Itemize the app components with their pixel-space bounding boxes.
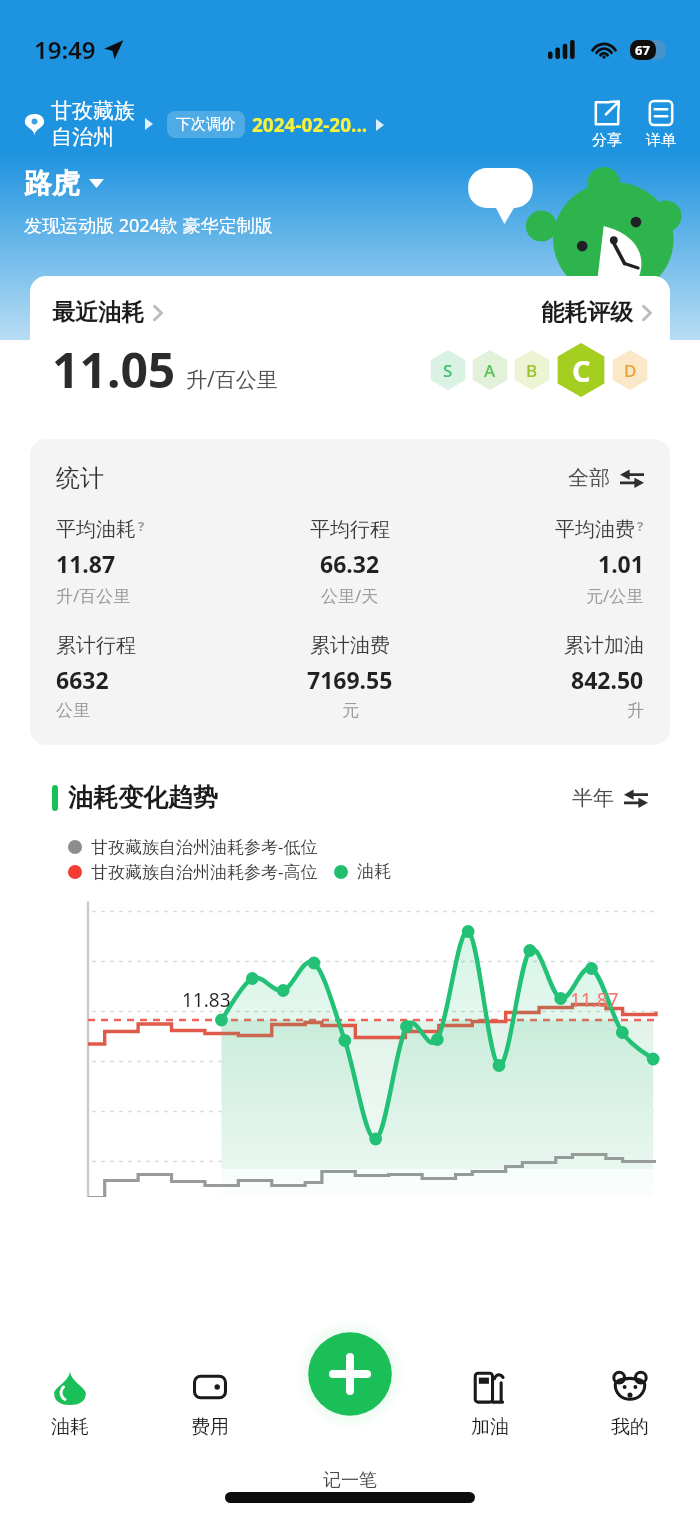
staticText: 我的 <box>611 1415 649 1439</box>
staticText: 油耗变化趋势 <box>68 782 218 813</box>
staticText: 11.83 <box>182 987 231 1013</box>
staticText: 平均油耗 <box>56 517 136 542</box>
staticText: 公里/天 <box>321 584 379 607</box>
staticText: 甘孜藏族 <box>51 98 135 124</box>
button[interactable]: 费用 <box>140 1369 280 1439</box>
button[interactable]: 详单 <box>646 99 676 150</box>
button[interactable]: 油耗 <box>0 1369 140 1439</box>
staticText: 全部 <box>568 465 610 491</box>
button[interactable]: S <box>428 350 468 390</box>
staticText: 半年 <box>572 785 614 811</box>
staticText: ? <box>138 517 145 535</box>
button[interactable]: 我的 <box>560 1369 700 1439</box>
staticText: 甘孜藏族自治州油耗参考-高位 <box>91 860 318 883</box>
staticText: 统计 <box>56 463 104 493</box>
button[interactable]: 路虎 <box>24 166 104 201</box>
staticText: 1.01 <box>598 548 644 579</box>
button[interactable]: 全部 <box>568 465 644 491</box>
button[interactable]: 半年 <box>572 785 648 811</box>
staticText: 油耗 <box>357 861 391 882</box>
staticText: 842.50 <box>571 664 644 695</box>
staticText: 平均行程 <box>310 517 390 542</box>
staticText: 加油 <box>471 1415 509 1439</box>
button[interactable]: 最近油耗 <box>30 276 670 426</box>
button[interactable]: A <box>470 350 510 390</box>
staticText: 6632 <box>56 664 109 695</box>
staticText: 最近油耗 <box>52 298 144 327</box>
staticText: 7169.55 <box>307 664 393 695</box>
staticText: 累计油费 <box>310 633 390 658</box>
staticText: C <box>572 351 591 390</box>
button[interactable]: 加油 <box>420 1369 560 1439</box>
button[interactable]: C <box>554 343 608 397</box>
button[interactable]: 分享 <box>592 99 622 150</box>
staticText: 发现运动版 2024款 豪华定制版 <box>24 213 273 238</box>
staticText: 记一笔 <box>323 1469 377 1492</box>
staticText: 费用 <box>191 1415 229 1439</box>
staticText: 升 <box>627 700 644 721</box>
staticText: 67 <box>635 41 650 59</box>
button[interactable]: D <box>610 350 650 390</box>
staticText: 自治州 <box>51 124 114 150</box>
staticText: 66.32 <box>320 548 380 579</box>
staticText: 平均油费 <box>555 517 635 542</box>
button[interactable]: 甘孜藏族 <box>24 98 153 150</box>
staticText: 累计加油 <box>564 633 644 658</box>
staticText: S <box>443 359 453 382</box>
staticText: 能耗评级 <box>541 298 633 327</box>
staticText: 11.05 <box>52 337 176 402</box>
staticText: 累计行程 <box>56 633 136 658</box>
button[interactable]: 记一笔 <box>295 1319 405 1429</box>
staticText: A <box>484 359 496 382</box>
button[interactable]: 下次调价 <box>167 111 384 138</box>
staticText: 分享 <box>592 131 622 150</box>
staticText: 元/公里 <box>586 584 644 607</box>
staticText: 下次调价 <box>176 115 236 134</box>
button[interactable]: B <box>512 350 552 390</box>
staticText: 路虎 <box>24 166 80 201</box>
staticText: 升/百公里 <box>56 584 131 607</box>
staticText: D <box>624 359 637 382</box>
staticText: B <box>526 359 538 382</box>
staticText: 升/百公里 <box>186 365 278 394</box>
staticText: 油耗 <box>51 1415 89 1439</box>
staticText: 公里 <box>56 700 90 721</box>
staticText: 11.87 <box>56 548 116 579</box>
staticText: 元 <box>342 700 359 721</box>
staticText: 详单 <box>646 131 676 150</box>
staticText: 甘孜藏族自治州油耗参考-低位 <box>91 835 318 858</box>
staticText: ? <box>637 517 644 535</box>
staticText: 11.87 <box>570 987 619 1013</box>
staticText: 19:49 <box>34 33 96 66</box>
staticText: 2024-02-20... <box>252 112 368 138</box>
